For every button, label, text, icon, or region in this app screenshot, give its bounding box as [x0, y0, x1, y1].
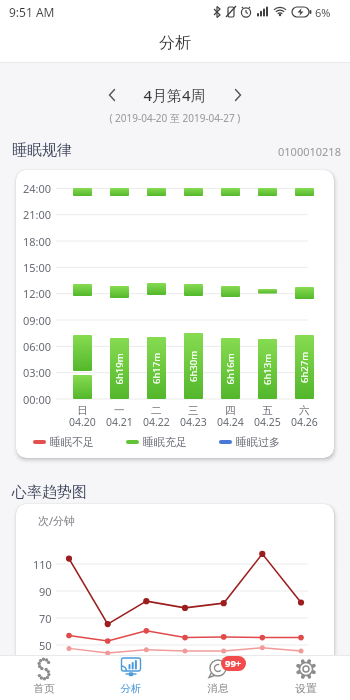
- button[interactable]: [87, 655, 174, 700]
- button[interactable]: [174, 655, 262, 700]
- button[interactable]: [80, 82, 270, 108]
- button[interactable]: [0, 655, 87, 700]
- button[interactable]: [262, 655, 350, 700]
- button[interactable]: [0, 24, 350, 62]
